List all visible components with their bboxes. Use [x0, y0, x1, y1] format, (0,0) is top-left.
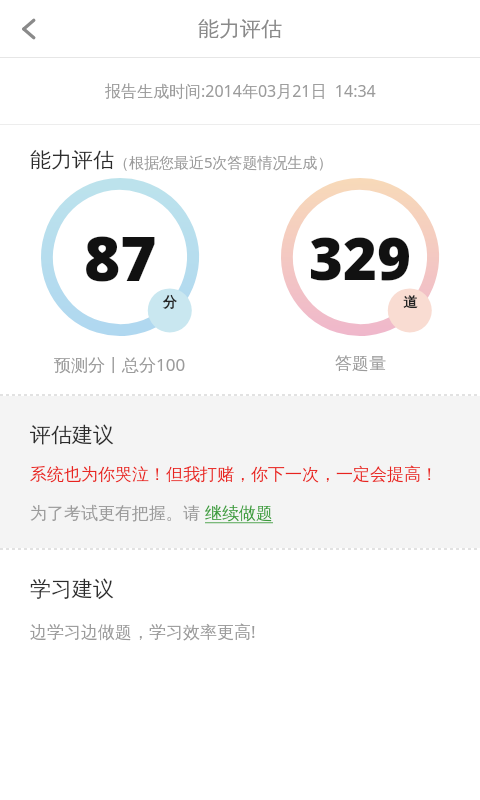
staticText: 学习建议	[30, 576, 114, 602]
staticText: 能力评估	[198, 16, 282, 42]
staticText: 继续做题	[205, 503, 273, 524]
staticText: 边学习边做题，学习效率更高!	[30, 620, 256, 643]
staticText: 系统也为你哭泣！但我打赌，你下一次，一定会提高！	[30, 464, 438, 485]
staticText: 评估建议	[30, 422, 114, 448]
staticText: 329	[309, 218, 411, 297]
staticText: 答题量	[335, 353, 386, 374]
staticText: （根据您最近5次答题情况生成）	[114, 152, 333, 172]
staticText: 分	[163, 294, 177, 312]
staticText: 为了考试更有把握。请	[30, 501, 205, 524]
button[interactable]: 继续做题	[205, 503, 273, 524]
staticText: 87	[84, 215, 157, 299]
staticText: 预测分丨总分100	[54, 353, 186, 376]
staticText: 报告生成时间:2014年03月21日 14:34	[105, 80, 376, 102]
staticText: 能力评估	[30, 147, 114, 173]
staticText: 道	[403, 294, 417, 312]
button[interactable]: Back	[0, 0, 58, 58]
